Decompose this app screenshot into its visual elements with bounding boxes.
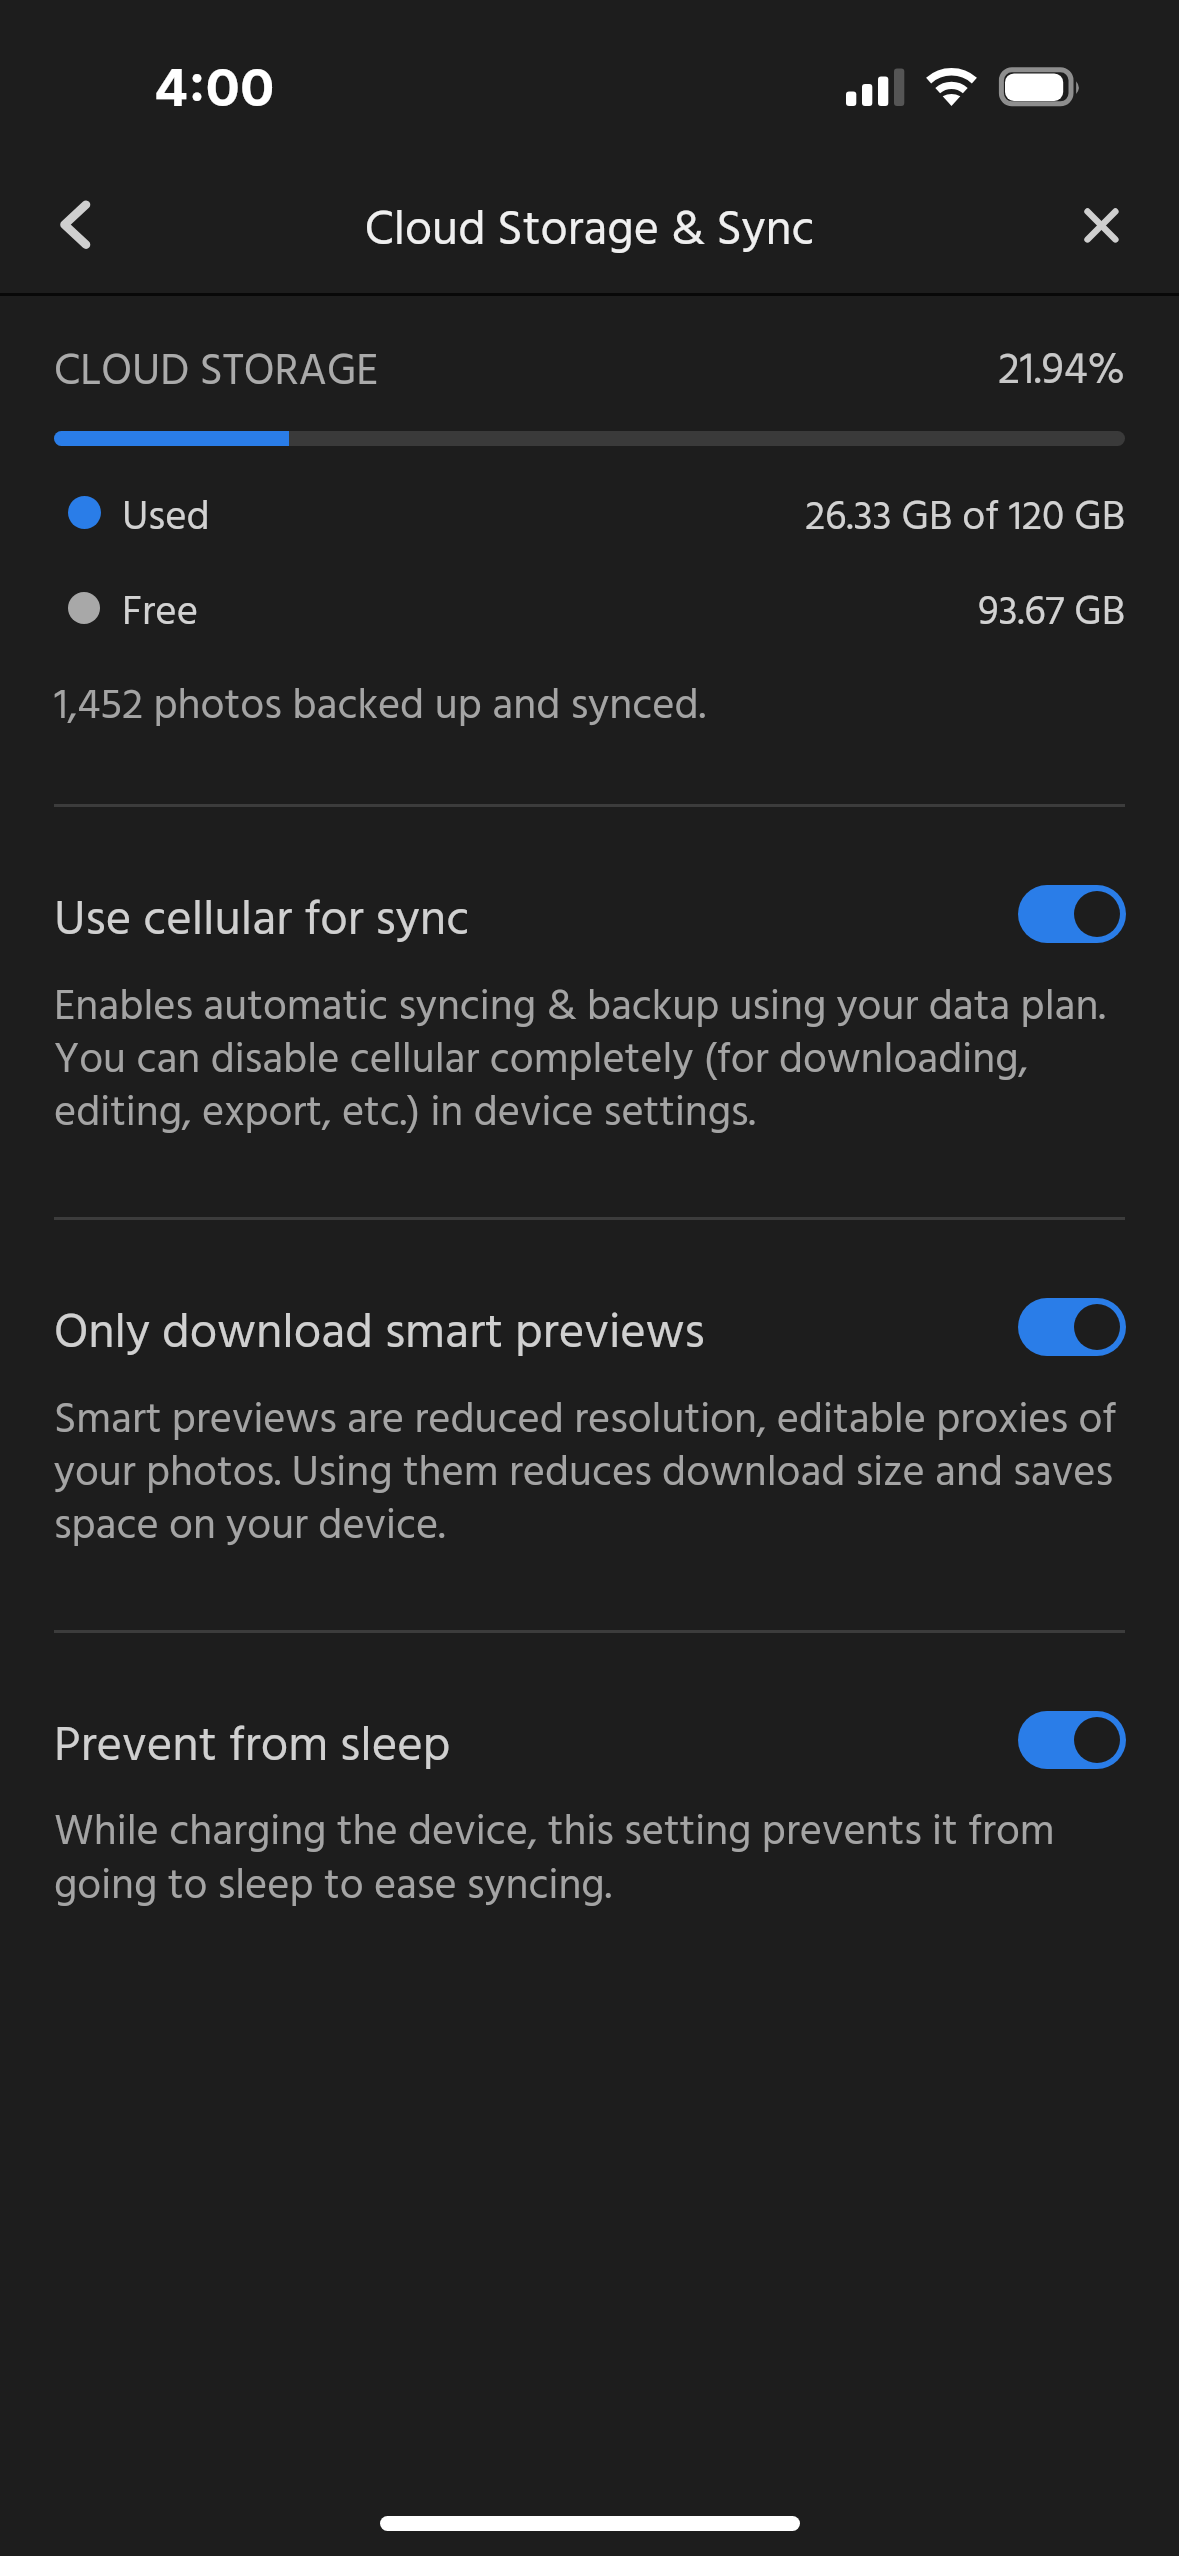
staticText: You can disable cellular completely (for… <box>54 1027 1029 1095</box>
button[interactable] <box>0 854 1179 980</box>
staticText: 4:00 <box>154 57 275 119</box>
staticText: Used <box>122 486 210 551</box>
staticText: going to sleep to ease syncing. <box>54 1853 612 1921</box>
staticText: 26.33 GB of 120 GB <box>0 486 1125 551</box>
staticText: Free <box>122 581 199 646</box>
button[interactable]: Prevent from sleep, on <box>1018 1711 1126 1769</box>
staticText: editing, export, etc.) in device setting… <box>54 1080 756 1148</box>
staticText: Smart previews are reduced resolution, e… <box>54 1387 1117 1455</box>
button[interactable]: Use cellular for sync, on <box>1018 885 1126 943</box>
staticText: space on your device. <box>54 1493 446 1561</box>
staticText: 1,452 photos backed up and synced. <box>54 673 706 741</box>
staticText: Prevent from sleep <box>54 1708 451 1786</box>
staticText: your photos. Using them reduces download… <box>54 1440 1113 1508</box>
button[interactable] <box>0 1680 1179 1806</box>
staticText: Enables automatic syncing & backup using… <box>54 974 1106 1042</box>
button[interactable]: Close <box>1046 170 1156 280</box>
button[interactable]: Only download smart previews, on <box>1018 1298 1126 1356</box>
button[interactable] <box>0 1267 1179 1393</box>
staticText: Only download smart previews <box>54 1295 705 1373</box>
staticText: 93.67 GB <box>0 581 1125 646</box>
staticText: 21.94% <box>0 336 1125 407</box>
staticText: While charging the device, this setting … <box>54 1799 1055 1867</box>
button[interactable]: Back <box>20 170 130 280</box>
staticText: Cloud Storage & Sync <box>0 193 1179 270</box>
staticText: CLOUD STORAGE <box>54 338 379 408</box>
staticText: Use cellular for sync <box>54 882 470 960</box>
